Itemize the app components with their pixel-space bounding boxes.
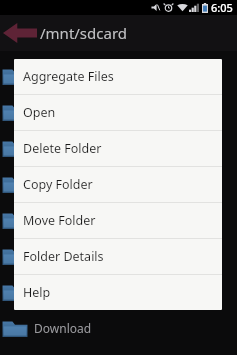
staticText: bluetooth: [34, 140, 90, 156]
staticText: Android: [34, 104, 79, 120]
button[interactable]: Help: [14, 275, 222, 310]
button[interactable]: android_secure: [0, 58, 237, 94]
button[interactable]: DCIM: [0, 274, 237, 310]
button[interactable]: Back: [0, 15, 40, 51]
staticText: Open: [23, 104, 56, 121]
staticText: android_secure: [34, 68, 121, 84]
staticText: Folder Details: [23, 248, 104, 265]
staticText: burstlyImageCache: [34, 176, 144, 192]
button[interactable]: Folder Details: [14, 239, 222, 274]
button[interactable]: clockworkmod: [0, 202, 237, 238]
button[interactable]: Open: [14, 95, 222, 130]
staticText: 6:05: [211, 0, 233, 15]
staticText: Delete Folder: [23, 140, 102, 157]
staticText: com.ovelin.guitartuna: [34, 248, 158, 264]
button[interactable]: Copy Folder: [14, 167, 222, 202]
staticText: Aggregate Files: [23, 68, 114, 85]
button[interactable]: burstlyImageCache: [0, 166, 237, 202]
button[interactable]: Move Folder: [14, 203, 222, 238]
button[interactable]: Android: [0, 94, 237, 130]
staticText: Copy Folder: [23, 176, 93, 193]
staticText: Download: [34, 320, 92, 336]
button[interactable]: bluetooth: [0, 130, 237, 166]
staticText: /mnt/sdcard: [40, 23, 128, 43]
staticText: Help: [23, 284, 51, 301]
staticText: Move Folder: [23, 212, 96, 229]
button[interactable]: Delete Folder: [14, 131, 222, 166]
button[interactable]: com.ovelin.guitartuna: [0, 238, 237, 274]
button[interactable]: Aggregate Files: [14, 59, 222, 94]
button[interactable]: Download: [0, 310, 237, 346]
staticText: clockworkmod: [34, 212, 117, 228]
staticText: DCIM: [34, 284, 66, 300]
